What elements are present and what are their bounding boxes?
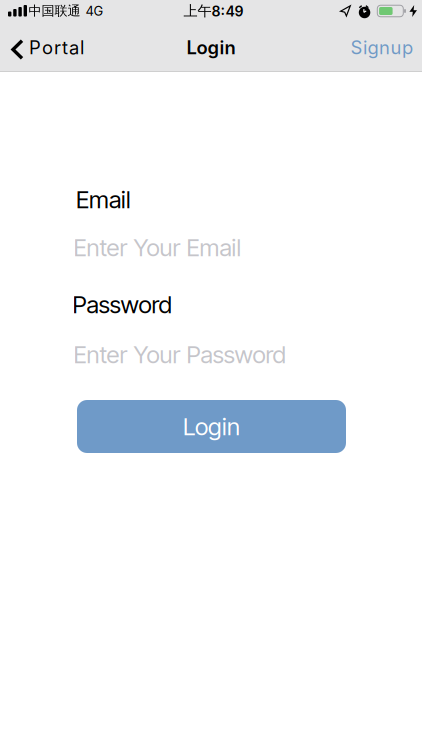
staticText: 中国联通 (28, 3, 80, 19)
staticText: Password (72, 290, 171, 319)
button[interactable]: Enter Your Password (73, 340, 345, 373)
staticText: Email (76, 185, 131, 214)
button[interactable]: Enter Your Email (73, 233, 345, 266)
button[interactable]: Login (77, 400, 346, 453)
staticText: Portal (29, 36, 84, 59)
staticText: 4G (85, 3, 103, 19)
button[interactable]: Portal (0, 35, 84, 58)
button[interactable]: Signup (350, 35, 422, 58)
staticText: Login (186, 36, 235, 59)
staticText: Signup (350, 36, 413, 59)
staticText: Enter Your Email (73, 233, 241, 262)
staticText: Login (183, 412, 240, 441)
staticText: Enter Your Password (73, 340, 285, 369)
staticText: 上午8:49 (183, 2, 243, 20)
